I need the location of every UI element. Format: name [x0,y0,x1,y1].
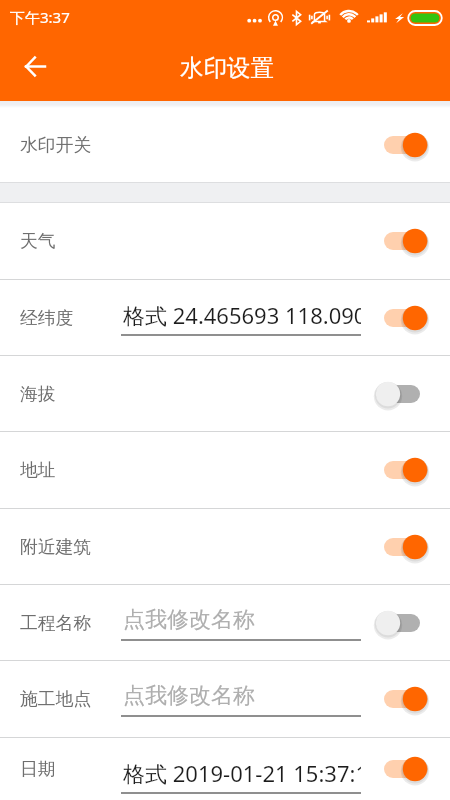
button[interactable]: Back [11,42,59,91]
staticText: 工程名称 [20,612,92,634]
staticText: 格式 24.465693 118.090123 [123,300,361,330]
button[interactable]: 施工地点 [0,661,450,737]
button[interactable]: 日期 [0,738,450,800]
button[interactable]: Toggle [375,454,427,486]
button[interactable]: 海拔 [0,356,450,431]
staticText: 日期 [20,758,56,780]
staticText: 水印开关 [20,134,92,156]
button[interactable]: Toggle [375,753,427,785]
button[interactable]: 工程名称 [0,585,450,660]
button[interactable]: Toggle [375,378,427,410]
staticText: 施工地点 [20,688,92,710]
button[interactable]: Toggle [375,302,427,334]
button[interactable]: 经纬度 [0,280,450,355]
staticText: 下午3:37 [10,7,70,27]
staticText: 点我修改名称 [123,682,255,710]
button[interactable]: Toggle [375,225,427,257]
button[interactable]: Toggle [375,531,427,563]
button[interactable]: Toggle [375,683,427,715]
staticText: 点我修改名称 [123,606,255,634]
staticText: 水印设置 [180,53,274,83]
staticText: 海拔 [20,383,56,405]
staticText: 经纬度 [20,307,74,329]
staticText: 附近建筑 [20,536,92,558]
button[interactable]: 地址 [0,432,450,508]
button[interactable]: Toggle [375,607,427,639]
button[interactable]: 水印开关 [0,108,450,182]
staticText: 天气 [20,230,56,252]
button[interactable]: 天气 [0,203,450,279]
staticText: 格式 2019-01-21 15:37:12 [123,758,361,788]
button[interactable]: 附近建筑 [0,509,450,584]
staticText: 地址 [20,459,56,481]
button[interactable]: Toggle [375,129,427,161]
